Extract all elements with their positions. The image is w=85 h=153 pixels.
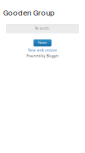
- button[interactable]: Home: [33, 39, 51, 46]
- staticText: No posts.: [35, 26, 50, 30]
- staticText: Home: [38, 41, 47, 45]
- staticText: View web version: [28, 48, 57, 52]
- staticText: Powered by Blogger: [26, 54, 58, 58]
- staticText: Gooden Group: [3, 8, 54, 17]
- button[interactable]: View web version: [0, 48, 85, 52]
